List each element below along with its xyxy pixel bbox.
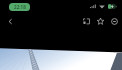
button[interactable]: Cast xyxy=(81,16,91,26)
staticText: 22:18 xyxy=(14,4,26,10)
button[interactable]: Back xyxy=(4,15,17,28)
button[interactable]: Favourite xyxy=(95,16,105,26)
button[interactable]: Ongoing call 22:18 xyxy=(9,3,30,11)
button[interactable]: More options xyxy=(109,16,119,26)
